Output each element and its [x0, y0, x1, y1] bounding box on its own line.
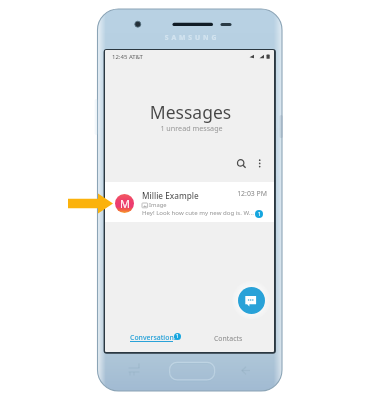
staticText: Millie Example — [142, 190, 199, 201]
button[interactable]: More options — [250, 154, 271, 175]
staticText: 1 unread message — [107, 123, 274, 133]
staticText: Hey! Look how cute my new dog is. W... — [142, 208, 254, 216]
button[interactable]: Start new conversation — [238, 287, 265, 314]
staticText: Contacts — [214, 334, 243, 343]
button[interactable]: Contacts — [190, 325, 274, 352]
staticText: Image — [149, 201, 167, 209]
staticText: 1 — [258, 211, 261, 218]
button[interactable]: Search — [231, 154, 252, 175]
button[interactable]: M — [105, 182, 274, 222]
button[interactable]: Conversations — [105, 325, 189, 352]
staticText: M — [120, 196, 130, 211]
staticText: SAMSUNG — [157, 33, 227, 42]
staticText: Conversations — [130, 333, 178, 342]
staticText: Messages — [106, 100, 274, 124]
staticText: 1 — [176, 333, 179, 340]
staticText: 12:45 AT&T — [112, 53, 143, 61]
staticText: 12:03 PM — [227, 189, 267, 198]
